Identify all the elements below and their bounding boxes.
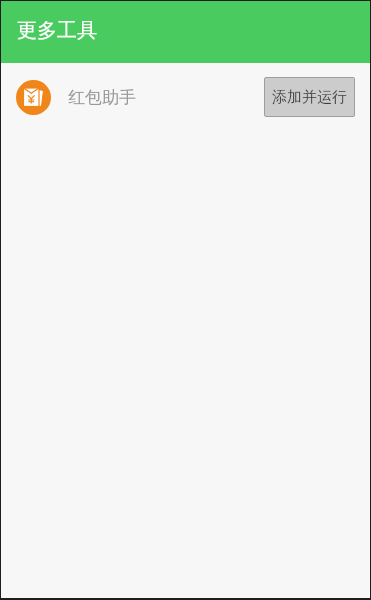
staticText: 更多工具: [17, 18, 97, 43]
other: 红包助手图标: [16, 80, 51, 115]
staticText: 添加并运行: [272, 88, 347, 107]
button[interactable]: 红包助手图标: [1, 63, 370, 131]
staticText: 红包助手: [68, 87, 136, 108]
button[interactable]: 添加并运行: [264, 77, 355, 117]
